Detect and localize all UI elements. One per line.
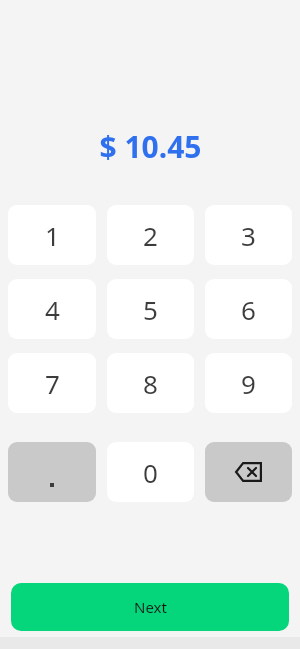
staticText: 6 <box>241 292 256 327</box>
button[interactable]: 8 <box>107 353 194 413</box>
button[interactable]: 3 <box>205 205 292 265</box>
staticText: 3 <box>241 218 256 253</box>
button[interactable]: 6 <box>205 279 292 339</box>
button[interactable]: 7 <box>8 353 96 413</box>
staticText: 5 <box>143 292 158 327</box>
staticText: 2 <box>143 218 158 253</box>
button[interactable]: Decimal point <box>8 442 96 502</box>
staticText: 8 <box>143 366 158 401</box>
staticText: 7 <box>45 366 60 401</box>
button[interactable]: 5 <box>107 279 194 339</box>
staticText: 4 <box>45 292 60 327</box>
button[interactable]: 1 <box>8 205 96 265</box>
staticText: Next <box>134 597 167 617</box>
staticText: $ 10.45 <box>99 126 202 167</box>
button[interactable]: Next <box>11 583 289 631</box>
button[interactable]: Backspace <box>205 442 292 502</box>
button[interactable]: 9 <box>205 353 292 413</box>
button[interactable]: 2 <box>107 205 194 265</box>
staticText: 1 <box>45 218 60 253</box>
staticText: 9 <box>241 366 256 401</box>
staticText: 0 <box>143 455 158 490</box>
button[interactable]: 4 <box>8 279 96 339</box>
button[interactable]: 0 <box>107 442 194 502</box>
